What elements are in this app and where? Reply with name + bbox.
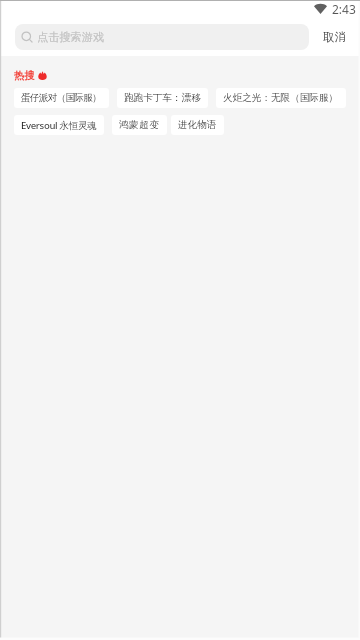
staticText: 跑跑卡丁车：漂移 [124, 92, 201, 104]
button[interactable]: Eversoul 永恒灵魂 [14, 115, 104, 135]
staticText: 进化物语 [178, 119, 217, 131]
staticText: 热搜 [14, 69, 35, 82]
button[interactable]: 跑跑卡丁车：漂移 [117, 88, 208, 108]
other: Wi-Fi signal [314, 4, 327, 14]
staticText: 取消 [323, 30, 346, 44]
other: Search [21, 31, 33, 43]
staticText: Eversoul 永恒灵魂 [21, 119, 97, 132]
staticText: 火炬之光：无限（国际服） [223, 92, 339, 104]
button[interactable]: 火炬之光：无限（国际服） [216, 88, 346, 108]
button[interactable]: Search [15, 24, 309, 50]
button[interactable]: 鸿蒙超变 [112, 115, 167, 135]
staticText: 鸿蒙超变 [119, 119, 160, 131]
staticText: 蛋仔派对（国际服） [21, 92, 102, 104]
staticText: 点击搜索游戏 [37, 30, 105, 44]
staticText: 2:43 [332, 1, 356, 17]
button[interactable]: 取消 [309, 18, 360, 56]
button[interactable]: 蛋仔派对（国际服） [14, 88, 109, 108]
button[interactable]: 进化物语 [171, 115, 224, 135]
